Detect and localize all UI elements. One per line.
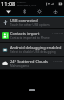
staticText: Contacts import — [10, 31, 40, 36]
button[interactable]: Android debugging enabled — [0, 43, 64, 57]
staticText: Android debugging enabled — [10, 45, 62, 50]
staticText: Contacts imported to Phone — [10, 36, 50, 40]
button[interactable]: Contacts import — [0, 29, 64, 43]
staticText: 24° Scattered Clouds — [10, 59, 48, 64]
staticText: Maharagama — [10, 64, 29, 68]
button[interactable]: Wi-Fi — [1, 7, 16, 16]
staticText: USB connected — [10, 18, 38, 23]
button[interactable]: USB connected — [0, 17, 64, 29]
button[interactable]: Close notification shade — [29, 89, 35, 91]
staticText: 11:08 — [1, 0, 16, 7]
staticText: 1:07 PM — [53, 59, 63, 62]
button[interactable]: Bluetooth — [17, 7, 32, 16]
button[interactable]: 24° Scattered Clouds — [0, 57, 64, 70]
staticText: Select to disable USB debugging — [10, 50, 56, 54]
button[interactable]: Brightness — [32, 7, 47, 16]
staticText: TUESDAY — [17, 1, 27, 4]
button[interactable]: Airplane mode — [48, 7, 63, 16]
staticText: DECEMBER 3, 2013 — [17, 4, 37, 7]
staticText: 11:06 AM — [52, 31, 63, 34]
staticText: Touch for other USB options — [10, 23, 50, 27]
